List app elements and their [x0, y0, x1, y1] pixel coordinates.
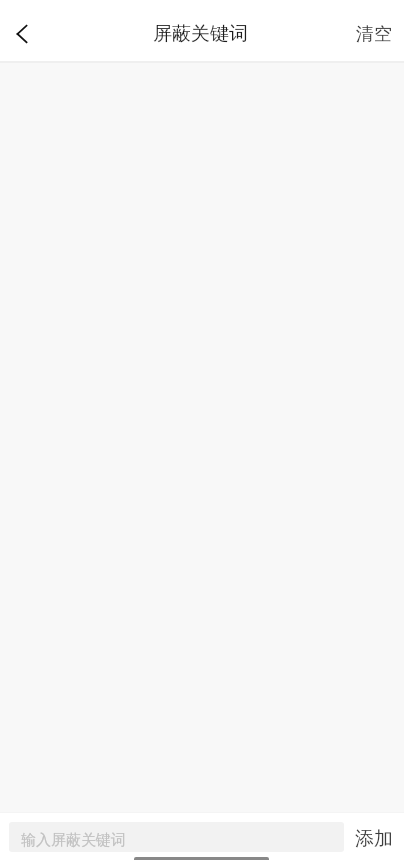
button[interactable]: 清空	[350, 13, 398, 56]
button[interactable]: 添加	[344, 815, 404, 859]
button[interactable]: Back	[0, 11, 45, 57]
button[interactable]: 输入屏蔽关键词	[9, 822, 344, 852]
staticText: 清空	[356, 23, 392, 46]
staticText: 输入屏蔽关键词	[21, 831, 126, 850]
staticText: 添加	[355, 827, 393, 851]
staticText: 屏蔽关键词	[153, 22, 248, 46]
